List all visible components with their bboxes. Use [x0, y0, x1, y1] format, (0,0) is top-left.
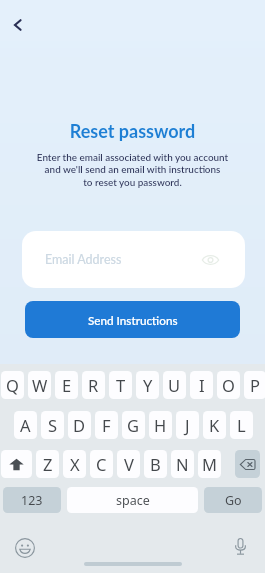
staticText: T: [116, 374, 126, 396]
staticText: Z: [43, 453, 53, 475]
button[interactable]: 123: [3, 487, 61, 513]
staticText: G: [127, 414, 140, 436]
button[interactable]: N: [171, 450, 194, 478]
button[interactable]: X: [63, 450, 86, 478]
button[interactable]: Q: [1, 371, 24, 399]
button[interactable]: C: [90, 450, 113, 478]
staticText: Send Instructions: [88, 313, 178, 327]
staticText: C: [96, 453, 107, 475]
button[interactable]: G: [122, 411, 145, 439]
staticText: V: [124, 453, 134, 475]
button[interactable]: K: [203, 411, 226, 439]
staticText: P: [250, 374, 260, 396]
button[interactable]: Backspace: [235, 450, 260, 478]
staticText: M: [202, 453, 217, 475]
staticText: S: [48, 414, 58, 436]
button[interactable]: Shift: [1, 450, 32, 478]
staticText: Q: [6, 374, 19, 396]
button[interactable]: I: [190, 371, 213, 399]
staticText: F: [102, 414, 111, 436]
staticText: R: [88, 374, 99, 396]
button[interactable]: E: [55, 371, 78, 399]
button[interactable]: A: [14, 411, 37, 439]
button[interactable]: Y: [136, 371, 159, 399]
staticText: 123: [21, 492, 43, 509]
staticText: A: [20, 414, 31, 436]
staticText: N: [176, 453, 189, 475]
button[interactable]: Voice input: [226, 532, 254, 560]
button[interactable]: R: [82, 371, 105, 399]
staticText: Y: [143, 374, 153, 396]
staticText: Reset password: [0, 120, 265, 142]
button[interactable]: M: [198, 450, 221, 478]
button[interactable]: W: [28, 371, 51, 399]
button[interactable]: B: [144, 450, 167, 478]
button[interactable]: Go: [204, 487, 262, 513]
button[interactable]: D: [68, 411, 91, 439]
button[interactable]: Z: [36, 450, 59, 478]
button[interactable]: U: [163, 371, 186, 399]
button[interactable]: O: [217, 371, 240, 399]
button[interactable]: P: [244, 371, 265, 399]
button[interactable]: J: [176, 411, 199, 439]
button[interactable]: S: [41, 411, 64, 439]
button[interactable]: Emoji: [11, 534, 39, 562]
button[interactable]: F: [95, 411, 118, 439]
button[interactable]: H: [149, 411, 172, 439]
button[interactable]: L: [230, 411, 253, 439]
staticText: Email Address: [45, 252, 122, 267]
staticText: X: [70, 453, 80, 475]
staticText: D: [73, 414, 86, 436]
button[interactable]: Email Address: [22, 231, 245, 288]
staticText: Go: [225, 492, 242, 509]
staticText: Enter the email associated with you acco…: [14, 151, 251, 188]
staticText: J: [185, 414, 190, 436]
staticText: I: [199, 374, 205, 396]
staticText: H: [154, 414, 167, 436]
button[interactable]: Send Instructions: [25, 301, 240, 338]
staticText: O: [222, 374, 235, 396]
staticText: E: [62, 374, 72, 396]
button[interactable]: T: [109, 371, 132, 399]
button[interactable]: V: [117, 450, 140, 478]
button[interactable]: Back: [3, 10, 33, 40]
staticText: U: [168, 374, 181, 396]
staticText: K: [209, 414, 220, 436]
staticText: space: [116, 492, 150, 509]
staticText: B: [150, 453, 161, 475]
staticText: L: [237, 414, 246, 436]
button[interactable]: space: [67, 487, 198, 513]
staticText: W: [32, 374, 48, 396]
